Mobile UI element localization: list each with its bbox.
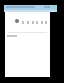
button[interactable]: Profile xyxy=(15,19,19,23)
